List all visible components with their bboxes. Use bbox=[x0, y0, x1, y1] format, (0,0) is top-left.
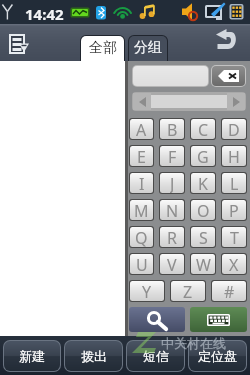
button[interactable]: Backspace bbox=[212, 66, 245, 86]
button[interactable]: 分组 bbox=[129, 36, 167, 61]
button[interactable]: 全部 bbox=[81, 36, 124, 61]
staticText: R bbox=[167, 227, 177, 247]
staticText: 全部 bbox=[89, 39, 117, 57]
button[interactable]: # bbox=[212, 281, 246, 301]
button[interactable]: J bbox=[160, 173, 184, 193]
staticText: Z bbox=[183, 281, 193, 301]
button[interactable]: 拨出 bbox=[65, 341, 122, 371]
staticText: U bbox=[136, 254, 148, 274]
button[interactable]: X bbox=[222, 254, 246, 274]
button[interactable]: O bbox=[191, 200, 215, 220]
button[interactable]: N bbox=[160, 200, 184, 220]
staticText: D bbox=[228, 119, 240, 139]
button[interactable] bbox=[133, 66, 208, 86]
staticText: Q bbox=[135, 227, 148, 247]
staticText: 中关村在线 bbox=[161, 335, 226, 351]
button[interactable]: R bbox=[160, 227, 184, 247]
button[interactable]: 短信 bbox=[127, 341, 184, 371]
staticText: G bbox=[197, 146, 209, 166]
button[interactable]: P bbox=[222, 200, 246, 220]
button[interactable]: Scroll right bbox=[227, 93, 245, 110]
button[interactable]: M bbox=[130, 200, 153, 220]
staticText: A bbox=[136, 119, 147, 139]
button[interactable]: 新建 bbox=[4, 341, 60, 371]
staticText: 定位盘 bbox=[198, 348, 237, 364]
staticText: 拨出 bbox=[81, 348, 107, 364]
staticText: S bbox=[199, 227, 208, 247]
staticText: M bbox=[134, 200, 149, 220]
button[interactable]: Search bbox=[129, 307, 185, 332]
staticText: L bbox=[230, 173, 239, 193]
button[interactable]: Keyboard bbox=[190, 307, 247, 332]
button[interactable]: H bbox=[222, 146, 246, 166]
button[interactable]: B bbox=[160, 119, 184, 139]
staticText: N bbox=[166, 200, 179, 220]
staticText: 短信 bbox=[143, 348, 169, 364]
staticText: K bbox=[198, 173, 208, 193]
staticText: P bbox=[229, 200, 239, 220]
staticText: V bbox=[167, 254, 177, 274]
button[interactable]: V bbox=[160, 254, 184, 274]
staticText: # bbox=[224, 281, 235, 301]
button[interactable]: Y bbox=[130, 281, 164, 301]
button[interactable]: Scroll left bbox=[133, 93, 151, 110]
button[interactable]: F bbox=[160, 146, 184, 166]
button[interactable]: I bbox=[130, 173, 153, 193]
staticText: 新建 bbox=[19, 348, 45, 364]
staticText: I bbox=[139, 173, 145, 193]
staticText: C bbox=[198, 119, 209, 139]
staticText: F bbox=[168, 146, 177, 166]
button[interactable]: C bbox=[191, 119, 215, 139]
button[interactable]: Z bbox=[171, 281, 205, 301]
button[interactable]: E bbox=[130, 146, 153, 166]
button[interactable]: Q bbox=[130, 227, 153, 247]
staticText: E bbox=[137, 146, 146, 166]
button[interactable]: T bbox=[222, 227, 246, 247]
staticText: X bbox=[229, 254, 239, 274]
button[interactable]: D bbox=[222, 119, 246, 139]
button[interactable]: U bbox=[130, 254, 153, 274]
button[interactable]: A bbox=[130, 119, 153, 139]
staticText: W bbox=[196, 254, 211, 274]
button[interactable]: G bbox=[191, 146, 215, 166]
staticText: Y bbox=[142, 281, 152, 301]
button[interactable]: L bbox=[222, 173, 246, 193]
button[interactable]: 定位盘 bbox=[189, 341, 246, 371]
button[interactable]: K bbox=[191, 173, 215, 193]
staticText: 14:42 bbox=[25, 4, 64, 24]
button[interactable]: List options bbox=[9, 34, 29, 54]
button[interactable]: Back bbox=[215, 29, 239, 51]
staticText: H bbox=[228, 146, 240, 166]
staticText: O bbox=[197, 200, 210, 220]
staticText: T bbox=[230, 227, 239, 247]
staticText: 分组 bbox=[134, 39, 162, 57]
button[interactable]: W bbox=[191, 254, 215, 274]
staticText: B bbox=[167, 119, 178, 139]
button[interactable]: S bbox=[191, 227, 215, 247]
staticText: J bbox=[170, 173, 175, 193]
